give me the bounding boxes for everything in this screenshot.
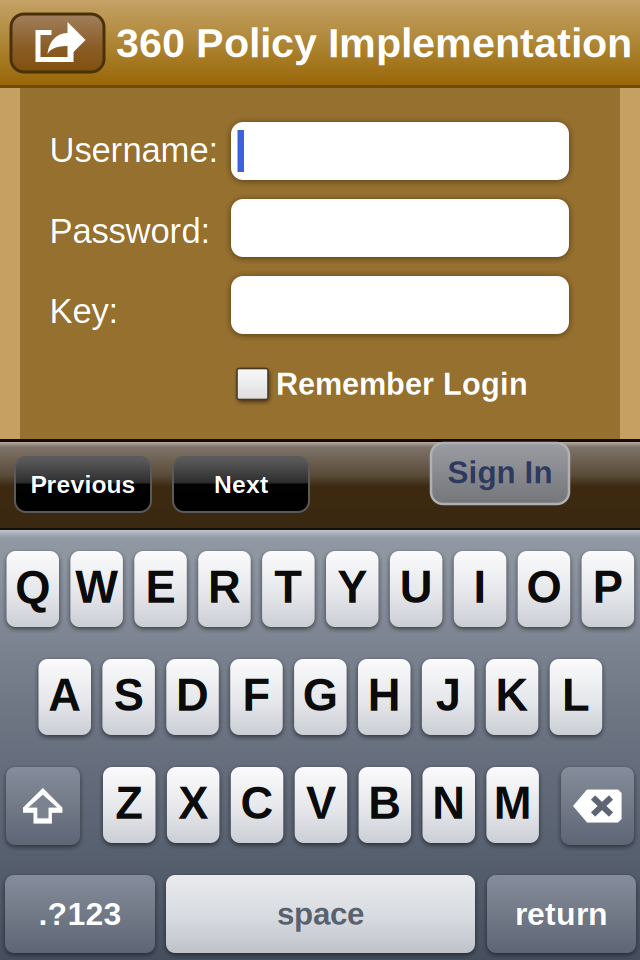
staticText: N [432,778,465,828]
staticText: Key: [49,292,118,330]
staticText: Q [15,562,50,612]
staticText: C [241,778,274,828]
button[interactable]: U [390,551,442,627]
button[interactable]: Next [173,457,309,512]
staticText: R [208,562,241,612]
staticText: Password: [49,212,210,250]
button[interactable]: X [167,767,219,843]
button[interactable]: B [359,767,411,843]
button[interactable]: D [166,659,219,735]
button[interactable]: Sign In [431,443,569,504]
button[interactable]: T [262,551,315,627]
button[interactable]: P [582,551,634,627]
button[interactable]: N [422,767,475,843]
button[interactable]: space [166,875,475,953]
button[interactable]: J [422,659,474,735]
button[interactable]: C [231,767,283,843]
staticText: X [178,778,208,828]
staticText: A [48,670,81,720]
button[interactable]: Numbers [5,875,155,953]
button[interactable]: Y [326,551,378,627]
staticText: return [515,896,608,932]
button[interactable]: Q [6,551,59,627]
staticText: B [368,778,401,828]
staticText: Sign In [447,455,552,490]
staticText: 360 Policy Implementation [116,20,632,66]
staticText: M [494,778,532,828]
staticText: T [274,562,302,612]
staticText: space [277,896,364,931]
button[interactable]: E [134,551,187,627]
button[interactable]: S [102,659,155,735]
button[interactable]: Return [487,875,636,953]
staticText: J [436,670,461,720]
staticText: D [176,670,209,720]
button[interactable]: I [454,551,506,627]
button[interactable]: Shift [6,767,80,845]
staticText: F [242,670,270,720]
button[interactable]: H [358,659,410,735]
staticText: K [495,670,528,720]
button[interactable]: Remember Login [237,366,567,402]
button[interactable]: Text field [231,122,569,180]
staticText: Username: [49,131,218,169]
staticText: W [75,562,118,612]
button[interactable]: Z [103,767,155,843]
staticText: Z [115,778,143,828]
button[interactable]: O [518,551,570,627]
staticText: Y [337,562,367,612]
staticText: H [368,670,401,720]
staticText: Remember Login [276,367,528,401]
staticText: S [114,670,144,720]
staticText: L [562,670,590,720]
staticText: G [303,670,338,720]
staticText: E [146,562,176,612]
staticText: P [593,562,623,612]
button[interactable]: R [198,551,251,627]
button[interactable]: K [486,659,538,735]
staticText: .?123 [38,896,121,932]
button[interactable]: M [486,767,539,843]
button[interactable]: F [230,659,283,735]
button[interactable]: A [38,659,91,735]
staticText: Previous [30,471,135,498]
button[interactable]: Delete [561,767,634,845]
button[interactable]: L [550,659,602,735]
button[interactable]: Text field [231,199,569,257]
staticText: I [474,562,487,612]
staticText: V [306,778,336,828]
staticText: Next [214,471,268,498]
button[interactable]: W [70,551,123,627]
button[interactable]: V [295,767,347,843]
button[interactable]: Share [11,14,104,72]
staticText: U [400,562,433,612]
button[interactable]: G [294,659,347,735]
button[interactable]: Text field [231,276,569,334]
staticText: O [526,562,561,612]
button[interactable]: Previous [15,457,151,512]
